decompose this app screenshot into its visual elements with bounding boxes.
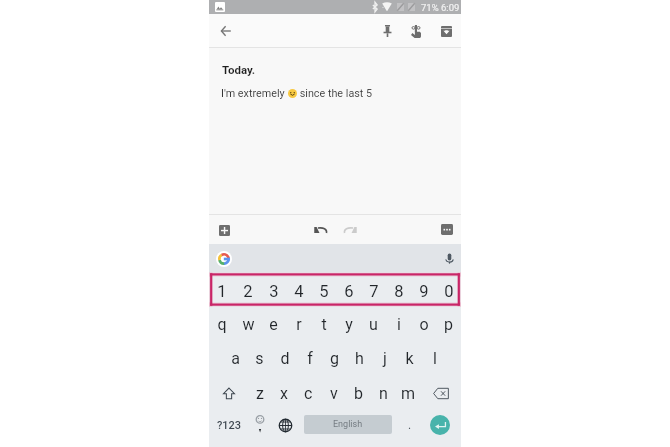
button[interactable]: Change language — [272, 412, 299, 438]
button[interactable]: Redo — [339, 218, 362, 241]
staticText: y — [345, 315, 353, 334]
button[interactable]: Shift — [209, 376, 248, 411]
staticText: Today. — [222, 63, 256, 76]
staticText: 4 — [294, 282, 304, 301]
staticText: 7 — [369, 282, 379, 301]
button[interactable]: a — [223, 341, 247, 376]
staticText: . — [408, 418, 412, 432]
button[interactable]: r — [286, 307, 311, 341]
staticText: u — [369, 315, 378, 334]
staticText: a — [231, 349, 240, 368]
button[interactable]: g — [322, 341, 347, 376]
staticText: j — [383, 349, 387, 368]
button[interactable]: h — [347, 341, 372, 376]
staticText: 71% 6:09 — [421, 2, 460, 13]
staticText: English — [333, 419, 363, 430]
button[interactable]: o — [411, 307, 436, 341]
button[interactable]: Pin — [374, 18, 400, 44]
staticText: c — [304, 384, 313, 403]
button[interactable]: 3 — [261, 274, 286, 309]
staticText: d — [280, 349, 290, 368]
button[interactable]: Google search — [213, 248, 234, 269]
button[interactable]: 7 — [361, 274, 386, 309]
staticText: 0 — [444, 282, 454, 301]
button[interactable]: t — [311, 307, 336, 341]
button[interactable]: 2 — [235, 274, 261, 309]
staticText: p — [444, 315, 453, 334]
staticText: 1 — [217, 282, 227, 301]
button[interactable]: ?123 — [210, 412, 248, 438]
staticText: g — [330, 349, 339, 368]
button[interactable]: Add — [213, 219, 235, 241]
button[interactable]: m — [396, 376, 421, 411]
staticText: e — [269, 315, 278, 334]
staticText: w — [242, 315, 255, 334]
button[interactable]: Emoji — [246, 412, 273, 438]
button[interactable]: Reminder — [403, 18, 429, 44]
staticText: 8 — [394, 282, 404, 301]
button[interactable]: . — [396, 412, 423, 438]
staticText: t — [321, 315, 327, 334]
button[interactable]: k — [397, 341, 422, 376]
button[interactable]: f — [297, 341, 322, 376]
staticText: x — [280, 384, 288, 403]
button[interactable]: Back — [215, 20, 237, 42]
button[interactable]: z — [248, 376, 272, 411]
button[interactable]: v — [321, 376, 346, 411]
button[interactable]: p — [436, 307, 461, 341]
staticText: h — [355, 349, 364, 368]
button[interactable]: 1 — [209, 274, 235, 309]
button[interactable]: n — [371, 376, 396, 411]
button[interactable]: u — [361, 307, 386, 341]
staticText: o — [419, 315, 429, 334]
button[interactable]: Undo — [309, 218, 332, 241]
staticText: 9 — [419, 282, 429, 301]
staticText: 6 — [344, 282, 354, 301]
button[interactable]: 6 — [336, 274, 361, 309]
button[interactable]: l — [422, 341, 447, 376]
staticText: q — [217, 315, 227, 334]
button[interactable]: d — [272, 341, 297, 376]
button[interactable]: q — [209, 307, 235, 341]
button[interactable]: y — [336, 307, 361, 341]
staticText: s — [255, 349, 264, 368]
button[interactable]: Archive — [433, 18, 459, 44]
button[interactable]: More options — [435, 218, 458, 241]
staticText: l — [433, 349, 437, 368]
button[interactable]: i — [386, 307, 411, 341]
staticText: 5 — [319, 282, 329, 301]
button[interactable]: Enter — [430, 415, 450, 435]
staticText: z — [256, 384, 264, 403]
button[interactable]: 4 — [286, 274, 311, 309]
staticText: b — [354, 384, 363, 403]
button[interactable]: c — [296, 376, 321, 411]
staticText: n — [379, 384, 388, 403]
staticText: r — [296, 315, 302, 334]
button[interactable]: 5 — [311, 274, 336, 309]
staticText: since the last 5 — [297, 87, 373, 100]
button[interactable]: s — [247, 341, 272, 376]
staticText: k — [405, 349, 414, 368]
staticText: I'm extremely — [221, 87, 288, 100]
button[interactable]: Backspace — [421, 376, 461, 411]
button[interactable]: 9 — [411, 274, 436, 309]
staticText: 2 — [243, 282, 253, 301]
button[interactable]: b — [346, 376, 371, 411]
button[interactable]: e — [261, 307, 286, 341]
button[interactable]: Voice input — [438, 247, 460, 269]
staticText: v — [330, 384, 338, 403]
button[interactable]: 0 — [436, 274, 461, 309]
staticText: ?123 — [217, 419, 242, 432]
button[interactable]: x — [272, 376, 296, 411]
button[interactable]: w — [235, 307, 261, 341]
button[interactable]: English — [304, 415, 392, 434]
staticText: m — [401, 384, 416, 403]
staticText: 3 — [269, 282, 279, 301]
button[interactable]: j — [372, 341, 397, 376]
button[interactable]: 8 — [386, 274, 411, 309]
staticText: i — [397, 315, 401, 334]
staticText: f — [307, 349, 313, 368]
